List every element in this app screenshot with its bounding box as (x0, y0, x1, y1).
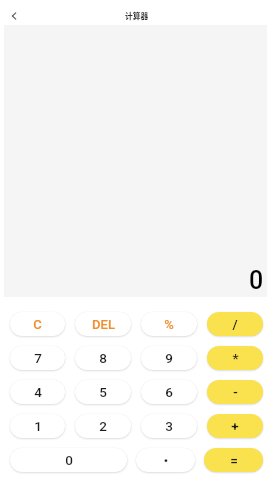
button[interactable]: 6 (141, 380, 197, 404)
button[interactable]: + (207, 414, 263, 438)
staticText: + (231, 418, 239, 434)
button[interactable]: C (10, 312, 65, 336)
button[interactable]: DEL (75, 312, 131, 336)
staticText: DEL (92, 317, 115, 332)
staticText: 9 (165, 350, 173, 366)
staticText: 8 (99, 350, 107, 366)
staticText: 6 (165, 384, 173, 400)
button[interactable]: 3 (141, 414, 197, 438)
staticText: = (230, 452, 238, 468)
staticText: 3 (165, 418, 173, 434)
staticText: % (164, 317, 174, 332)
staticText: 1 (34, 418, 42, 434)
button[interactable]: 8 (75, 346, 131, 370)
button[interactable]: 7 (10, 346, 65, 370)
button[interactable]: Back (2, 4, 26, 28)
staticText: 5 (99, 384, 107, 400)
staticText: 7 (34, 350, 42, 366)
button[interactable]: 9 (141, 346, 197, 370)
button[interactable]: = (204, 448, 263, 472)
staticText: 0 (65, 452, 73, 468)
staticText: / (232, 316, 238, 332)
button[interactable]: 1 (10, 414, 65, 438)
button[interactable]: - (207, 380, 263, 404)
button[interactable]: 0 (10, 448, 127, 472)
button[interactable]: 2 (75, 414, 131, 438)
staticText: 2 (99, 418, 107, 434)
button[interactable]: · (136, 448, 195, 472)
staticText: C (33, 317, 42, 332)
staticText: - (233, 384, 238, 400)
button[interactable]: / (207, 312, 263, 336)
staticText: 4 (34, 384, 42, 400)
staticText: 0 (249, 266, 264, 295)
button[interactable]: 5 (75, 380, 131, 404)
button[interactable]: 4 (10, 380, 65, 404)
staticText: 计算器 (125, 10, 149, 21)
button[interactable]: % (141, 312, 197, 336)
staticText: · (163, 450, 169, 471)
button[interactable]: * (207, 346, 263, 370)
staticText: * (232, 350, 239, 366)
